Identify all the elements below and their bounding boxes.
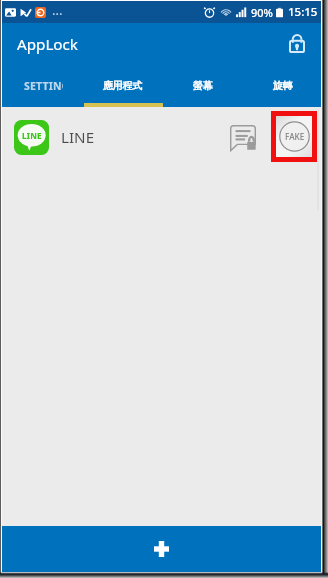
staticText: 螢幕 (193, 80, 213, 92)
staticText: LINE (61, 127, 95, 148)
staticText: 旋轉 (273, 80, 293, 92)
staticText: 15:15 (288, 4, 318, 20)
button[interactable]: 應用程式 (83, 67, 163, 105)
button[interactable]: Lock (281, 27, 313, 59)
button[interactable]: LINE (2, 107, 321, 165)
staticText: AppLock (17, 34, 78, 55)
staticText: ... (52, 1, 63, 19)
staticText: 90% (251, 5, 273, 20)
button[interactable]: 螢幕 (163, 67, 243, 105)
button[interactable]: Lock notifications (228, 123, 258, 153)
staticText: 應用程式 (103, 80, 143, 92)
button[interactable]: SETTING (3, 67, 83, 105)
staticText: FAKE (285, 131, 305, 142)
staticText: SETTING (24, 79, 63, 92)
button[interactable]: Add application (2, 526, 321, 572)
button[interactable]: Fake cover (276, 116, 312, 157)
button[interactable]: 旋轉 (243, 67, 323, 105)
staticText: LINE (22, 130, 42, 141)
